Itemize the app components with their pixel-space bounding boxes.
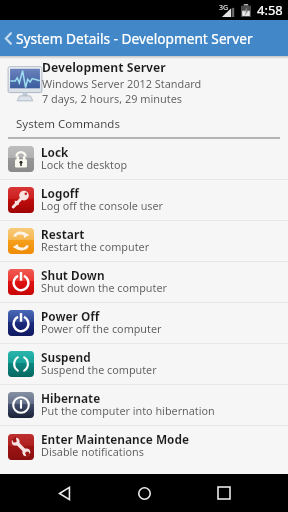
- button[interactable]: Restart: [0, 221, 288, 262]
- staticText: 4:58: [257, 1, 283, 19]
- staticText: System Details - Development Server: [16, 29, 253, 48]
- staticText: Shut down the computer: [41, 280, 167, 295]
- staticText: Restart: [41, 226, 85, 242]
- button[interactable]: Home: [128, 477, 160, 509]
- button[interactable]: Back: [48, 477, 80, 509]
- button[interactable]: Lock: [0, 139, 288, 180]
- staticText: 3G: [219, 3, 229, 13]
- button[interactable]: Recents: [208, 477, 240, 509]
- button[interactable]: Enter Maintenance Mode: [0, 426, 288, 467]
- staticText: Put the computer into hibernation: [41, 403, 215, 418]
- staticText: Disable notifications: [41, 444, 144, 459]
- staticText: Log off the console user: [41, 198, 164, 213]
- staticText: Shut Down: [41, 267, 105, 283]
- staticText: System Commands: [16, 116, 120, 132]
- other: Back: [3, 31, 14, 46]
- button[interactable]: Back: [0, 20, 288, 56]
- staticText: Windows Server 2012 Standard: [42, 76, 202, 91]
- staticText: Suspend the computer: [41, 362, 157, 377]
- staticText: 7 days, 2 hours, 29 minutes: [42, 91, 183, 106]
- button[interactable]: Power Off: [0, 303, 288, 344]
- staticText: Development Server: [42, 59, 166, 76]
- staticText: Suspend: [41, 349, 91, 365]
- staticText: Hibernate: [41, 390, 101, 406]
- staticText: Logoff: [41, 185, 79, 201]
- staticText: Restart the computer: [41, 239, 150, 254]
- staticText: Enter Maintenance Mode: [41, 431, 189, 447]
- button[interactable]: Logoff: [0, 180, 288, 221]
- staticText: Power Off: [41, 308, 100, 324]
- button[interactable]: Suspend: [0, 344, 288, 385]
- staticText: Power off the computer: [41, 321, 162, 336]
- button[interactable]: Hibernate: [0, 385, 288, 426]
- staticText: Lock: [41, 144, 69, 160]
- staticText: Lock the desktop: [41, 157, 128, 172]
- button[interactable]: Shut Down: [0, 262, 288, 303]
